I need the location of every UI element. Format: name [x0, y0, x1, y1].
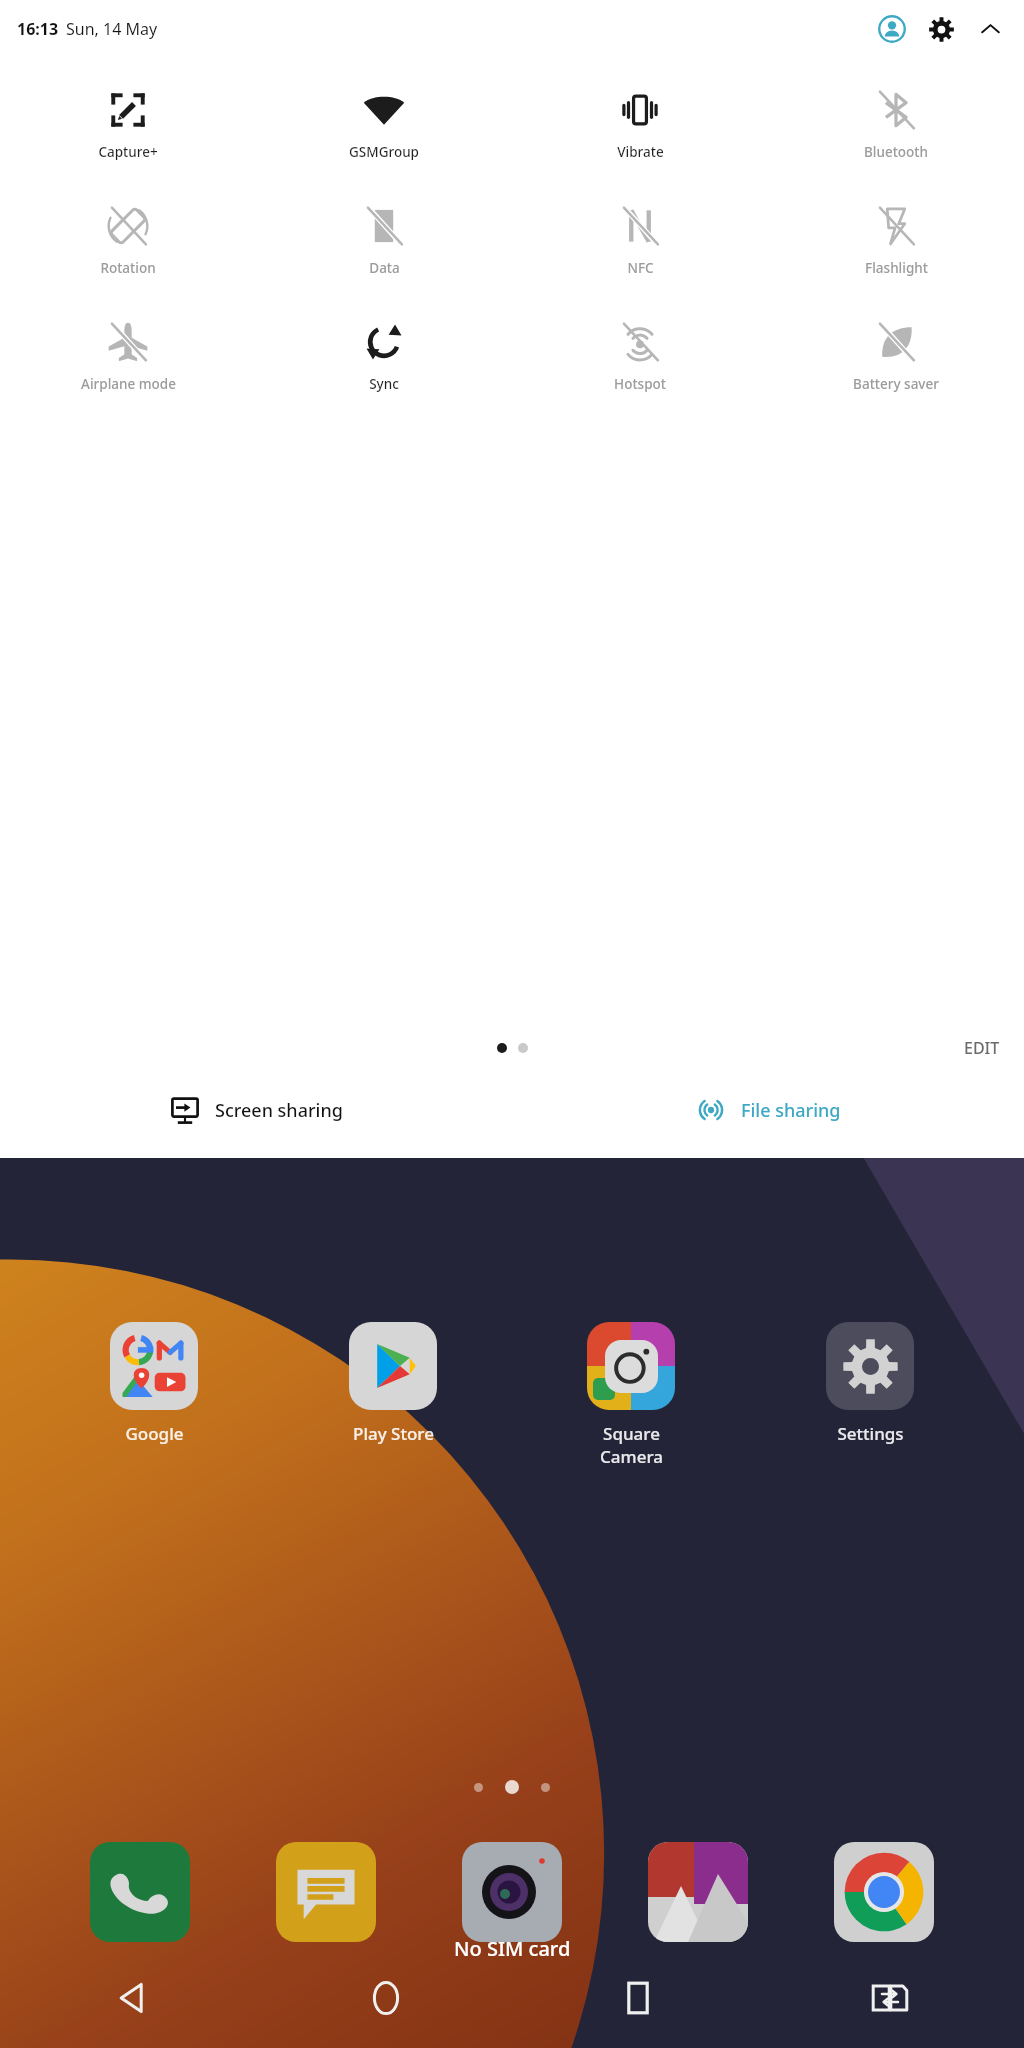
- staticText: Square Camera: [600, 1422, 663, 1468]
- button[interactable]: NFC: [512, 200, 768, 280]
- button[interactable]: Screen sharing: [0, 1078, 512, 1142]
- button[interactable]: Photos: [642, 1836, 754, 1948]
- staticText: Capture+: [98, 143, 158, 161]
- button[interactable]: GSMGroup: [256, 84, 512, 164]
- button[interactable]: Data: [256, 200, 512, 280]
- staticText: EDIT: [964, 1037, 1000, 1059]
- staticText: Hotspot: [614, 375, 666, 393]
- staticText: GSMGroup: [349, 143, 419, 161]
- staticText: No SIM card: [454, 1935, 571, 1962]
- staticText: Flashlight: [865, 259, 928, 277]
- button[interactable]: File sharing: [512, 1078, 1024, 1142]
- button[interactable]: Play Store: [308, 1322, 478, 1445]
- staticText: Screen sharing: [215, 1098, 343, 1123]
- button[interactable]: Sync: [256, 316, 512, 396]
- button[interactable]: Recents: [592, 1952, 684, 2044]
- staticText: Google: [125, 1422, 184, 1445]
- button[interactable]: Google: [69, 1322, 239, 1445]
- staticText: NFC: [627, 259, 654, 277]
- button[interactable]: Square Camera: [546, 1322, 716, 1468]
- button[interactable]: EDIT: [940, 1029, 1024, 1067]
- staticText: Settings: [837, 1422, 904, 1445]
- button[interactable]: Camera: [456, 1836, 568, 1948]
- staticText: Rotation: [100, 259, 156, 277]
- button[interactable]: Airplane mode: [0, 316, 256, 396]
- button[interactable]: User account: [874, 11, 910, 47]
- button[interactable]: Settings: [785, 1322, 955, 1445]
- button[interactable]: Chrome: [828, 1836, 940, 1948]
- button[interactable]: Messages: [270, 1836, 382, 1948]
- button[interactable]: Phone: [84, 1836, 196, 1948]
- button[interactable]: Capture+: [0, 84, 256, 164]
- button[interactable]: Home: [340, 1952, 432, 2044]
- staticText: Sun, 14 May: [66, 18, 158, 40]
- button[interactable]: Vibrate: [512, 84, 768, 164]
- button[interactable]: Hotspot: [512, 316, 768, 396]
- staticText: Vibrate: [617, 143, 664, 161]
- staticText: 16:13: [17, 18, 59, 40]
- button[interactable]: Back: [88, 1952, 180, 2044]
- button[interactable]: Collapse: [972, 11, 1008, 47]
- button[interactable]: Battery saver: [768, 316, 1024, 396]
- staticText: Play Store: [353, 1422, 434, 1445]
- staticText: File sharing: [741, 1098, 841, 1123]
- button[interactable]: Settings: [923, 11, 959, 47]
- staticText: Sync: [369, 375, 399, 393]
- button[interactable]: Bluetooth: [768, 84, 1024, 164]
- staticText: Airplane mode: [81, 375, 176, 393]
- button[interactable]: Flashlight: [768, 200, 1024, 280]
- staticText: Battery saver: [853, 375, 939, 393]
- button[interactable]: Rotation: [0, 200, 256, 280]
- staticText: Data: [369, 259, 400, 277]
- staticText: Bluetooth: [864, 143, 928, 161]
- button[interactable]: Switch apps: [844, 1952, 936, 2044]
